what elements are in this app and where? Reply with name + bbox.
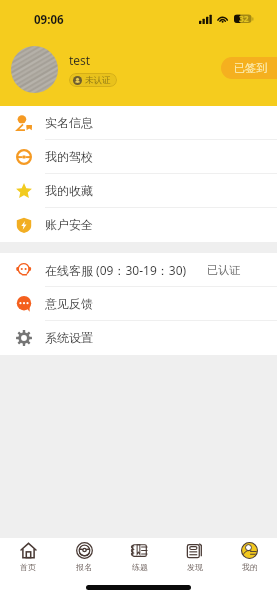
staticText: 未认证 — [85, 75, 111, 86]
button[interactable]: 我的 — [222, 542, 277, 572]
staticText: 我的驾校 — [45, 149, 93, 164]
staticText: 练题 — [132, 562, 148, 572]
button[interactable]: 已签到 — [221, 57, 277, 79]
button[interactable]: 我的收藏 — [0, 174, 277, 208]
staticText: 实名信息 — [45, 115, 93, 130]
staticText: 首页 — [20, 562, 36, 572]
button[interactable]: 未认证 — [73, 73, 111, 87]
staticText: 发现 — [187, 562, 203, 572]
button[interactable]: 意见反馈 — [0, 287, 277, 321]
button[interactable]: 系统设置 — [0, 321, 277, 355]
staticText: 意见反馈 — [45, 296, 93, 311]
button[interactable]: 账户安全 — [0, 208, 277, 242]
staticText: test — [69, 52, 91, 68]
staticText: 报名 — [76, 562, 92, 572]
button[interactable]: 练题 — [112, 542, 167, 572]
staticText: 我的 — [242, 562, 258, 572]
button[interactable]: 实名信息 — [0, 106, 277, 140]
button[interactable]: 首页 — [0, 542, 56, 572]
button[interactable]: 报名 — [56, 542, 112, 572]
staticText: 我的收藏 — [45, 183, 93, 198]
staticText: 09:06 — [34, 12, 64, 28]
staticText: 在线客服 (09：30-19：30) — [45, 262, 187, 278]
button[interactable]: 在线客服 (09：30-19：30) — [0, 253, 277, 287]
staticText: 已签到 — [234, 61, 267, 75]
button[interactable]: 发现 — [167, 542, 222, 572]
staticText: 账户安全 — [45, 217, 93, 232]
staticText: 系统设置 — [45, 330, 93, 345]
staticText: 已认证 — [207, 263, 240, 277]
staticText: 32 — [239, 13, 249, 24]
button[interactable]: 我的驾校 — [0, 140, 277, 174]
